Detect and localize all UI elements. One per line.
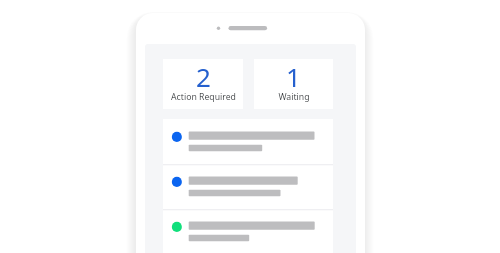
staticText: 1: [286, 59, 301, 94]
button[interactable]: Completed task: [163, 209, 333, 253]
staticText: Waiting: [278, 91, 310, 103]
staticText: 2: [196, 59, 211, 94]
button[interactable]: Task needing action: [163, 164, 333, 209]
button[interactable]: 2: [163, 59, 243, 109]
button[interactable]: 1: [254, 59, 333, 109]
button[interactable]: Task needing action: [163, 119, 333, 164]
staticText: Action Required: [171, 91, 236, 103]
